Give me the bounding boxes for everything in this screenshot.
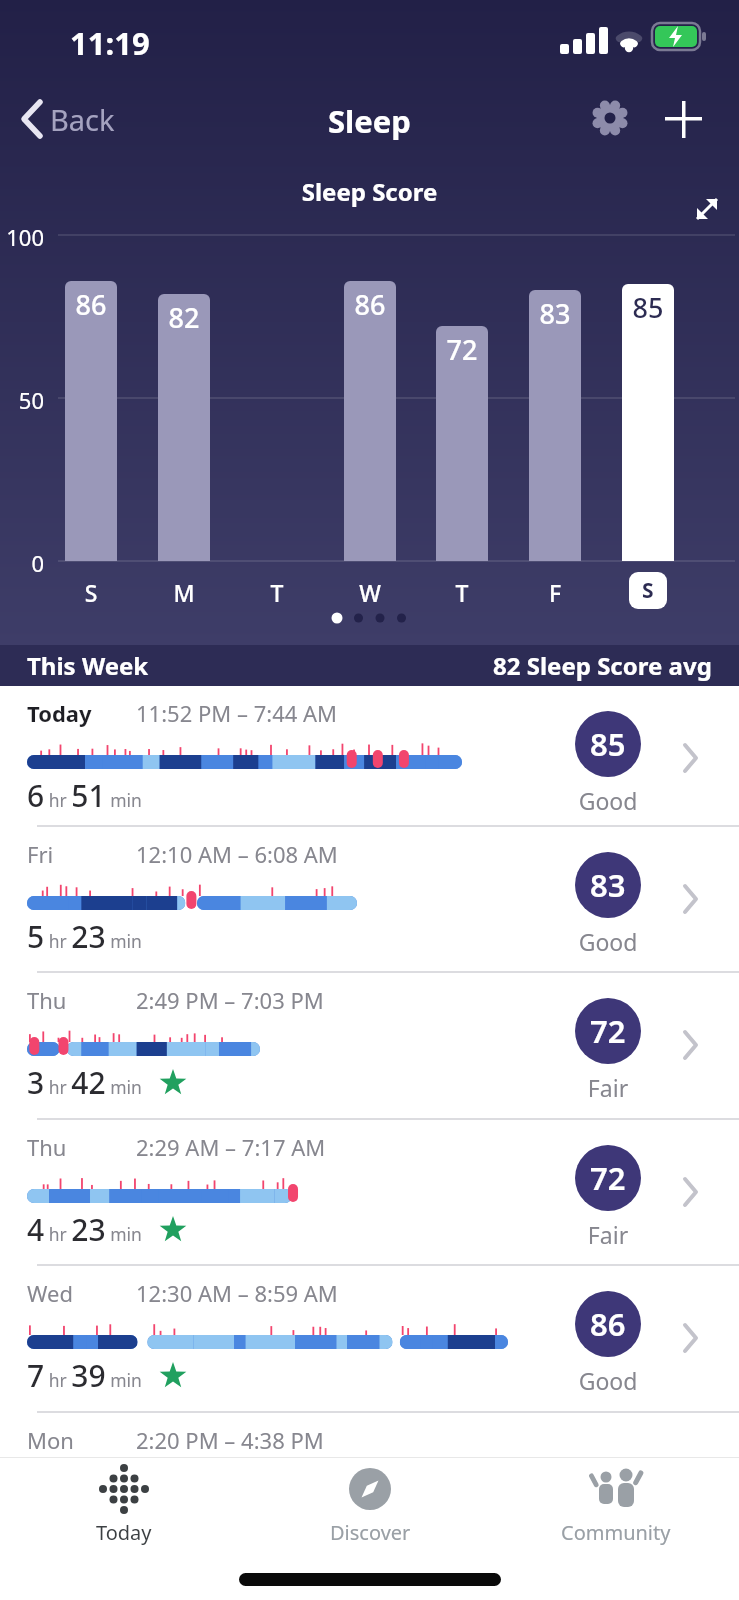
- staticText: 82 Sleep Score avg: [493, 649, 712, 682]
- button[interactable]: Today: [0, 686, 739, 827]
- staticText: 82: [158, 299, 210, 336]
- button[interactable]: [587, 96, 633, 142]
- staticText: 0: [2, 548, 44, 578]
- staticText: Mon: [27, 1425, 74, 1455]
- staticText: 85: [590, 723, 626, 765]
- staticText: 7 hr 39 min: [27, 1355, 142, 1396]
- staticText: This Week: [27, 649, 149, 682]
- button[interactable]: [661, 96, 707, 142]
- staticText: S: [642, 576, 654, 605]
- staticText: Good: [548, 785, 668, 816]
- button[interactable]: Fri: [0, 827, 739, 973]
- staticText: Fair: [548, 1072, 668, 1103]
- staticText: Today: [96, 1519, 152, 1546]
- staticText: Sleep Score: [0, 175, 739, 208]
- staticText: 86: [590, 1303, 626, 1345]
- staticText: S: [51, 577, 131, 608]
- staticText: Sleep: [0, 100, 739, 142]
- button[interactable]: Discover: [247, 1465, 493, 1546]
- staticText: Fri: [27, 839, 54, 869]
- staticText: 3 hr 42 min: [27, 1062, 142, 1103]
- button[interactable]: Thu: [0, 1120, 739, 1266]
- staticText: 72: [590, 1157, 626, 1199]
- staticText: 6 hr 51 min: [27, 775, 142, 816]
- button[interactable]: Wed: [0, 1266, 739, 1413]
- staticText: 85: [622, 289, 674, 326]
- staticText: 2:29 AM – 7:17 AM: [136, 1132, 326, 1162]
- staticText: W: [330, 577, 410, 608]
- staticText: Good: [548, 1365, 668, 1396]
- staticText: Community: [561, 1519, 671, 1546]
- staticText: 72: [590, 1010, 626, 1052]
- staticText: Fair: [548, 1219, 668, 1250]
- button[interactable]: Thu: [0, 973, 739, 1120]
- staticText: 50: [2, 385, 44, 415]
- staticText: 86: [65, 286, 117, 323]
- staticText: 86: [344, 286, 396, 323]
- button[interactable]: Community: [493, 1465, 739, 1546]
- staticText: M: [144, 577, 224, 608]
- staticText: Today: [27, 698, 92, 728]
- staticText: Discover: [330, 1519, 411, 1546]
- staticText: T: [237, 577, 317, 608]
- staticText: 100: [2, 222, 44, 252]
- staticText: 12:10 AM – 6:08 AM: [136, 839, 338, 869]
- button[interactable]: Today: [0, 1465, 247, 1546]
- staticText: 12:30 AM – 8:59 AM: [136, 1278, 338, 1308]
- staticText: Wed: [27, 1278, 73, 1308]
- staticText: 72: [436, 331, 488, 368]
- button[interactable]: Back: [16, 96, 146, 144]
- staticText: T: [422, 577, 502, 608]
- staticText: 2:49 PM – 7:03 PM: [136, 985, 324, 1015]
- staticText: F: [515, 577, 595, 608]
- staticText: 5 hr 23 min: [27, 916, 142, 957]
- staticText: 4 hr 23 min: [27, 1209, 142, 1250]
- staticText: 2:20 PM – 4:38 PM: [136, 1425, 324, 1455]
- staticText: Thu: [27, 1132, 67, 1162]
- staticText: 83: [529, 295, 581, 332]
- staticText: 11:19: [70, 22, 150, 64]
- staticText: 11:52 PM – 7:44 AM: [136, 698, 338, 728]
- staticText: Good: [548, 926, 668, 957]
- staticText: Back: [50, 100, 115, 139]
- staticText: 83: [590, 864, 626, 906]
- staticText: Thu: [27, 985, 67, 1015]
